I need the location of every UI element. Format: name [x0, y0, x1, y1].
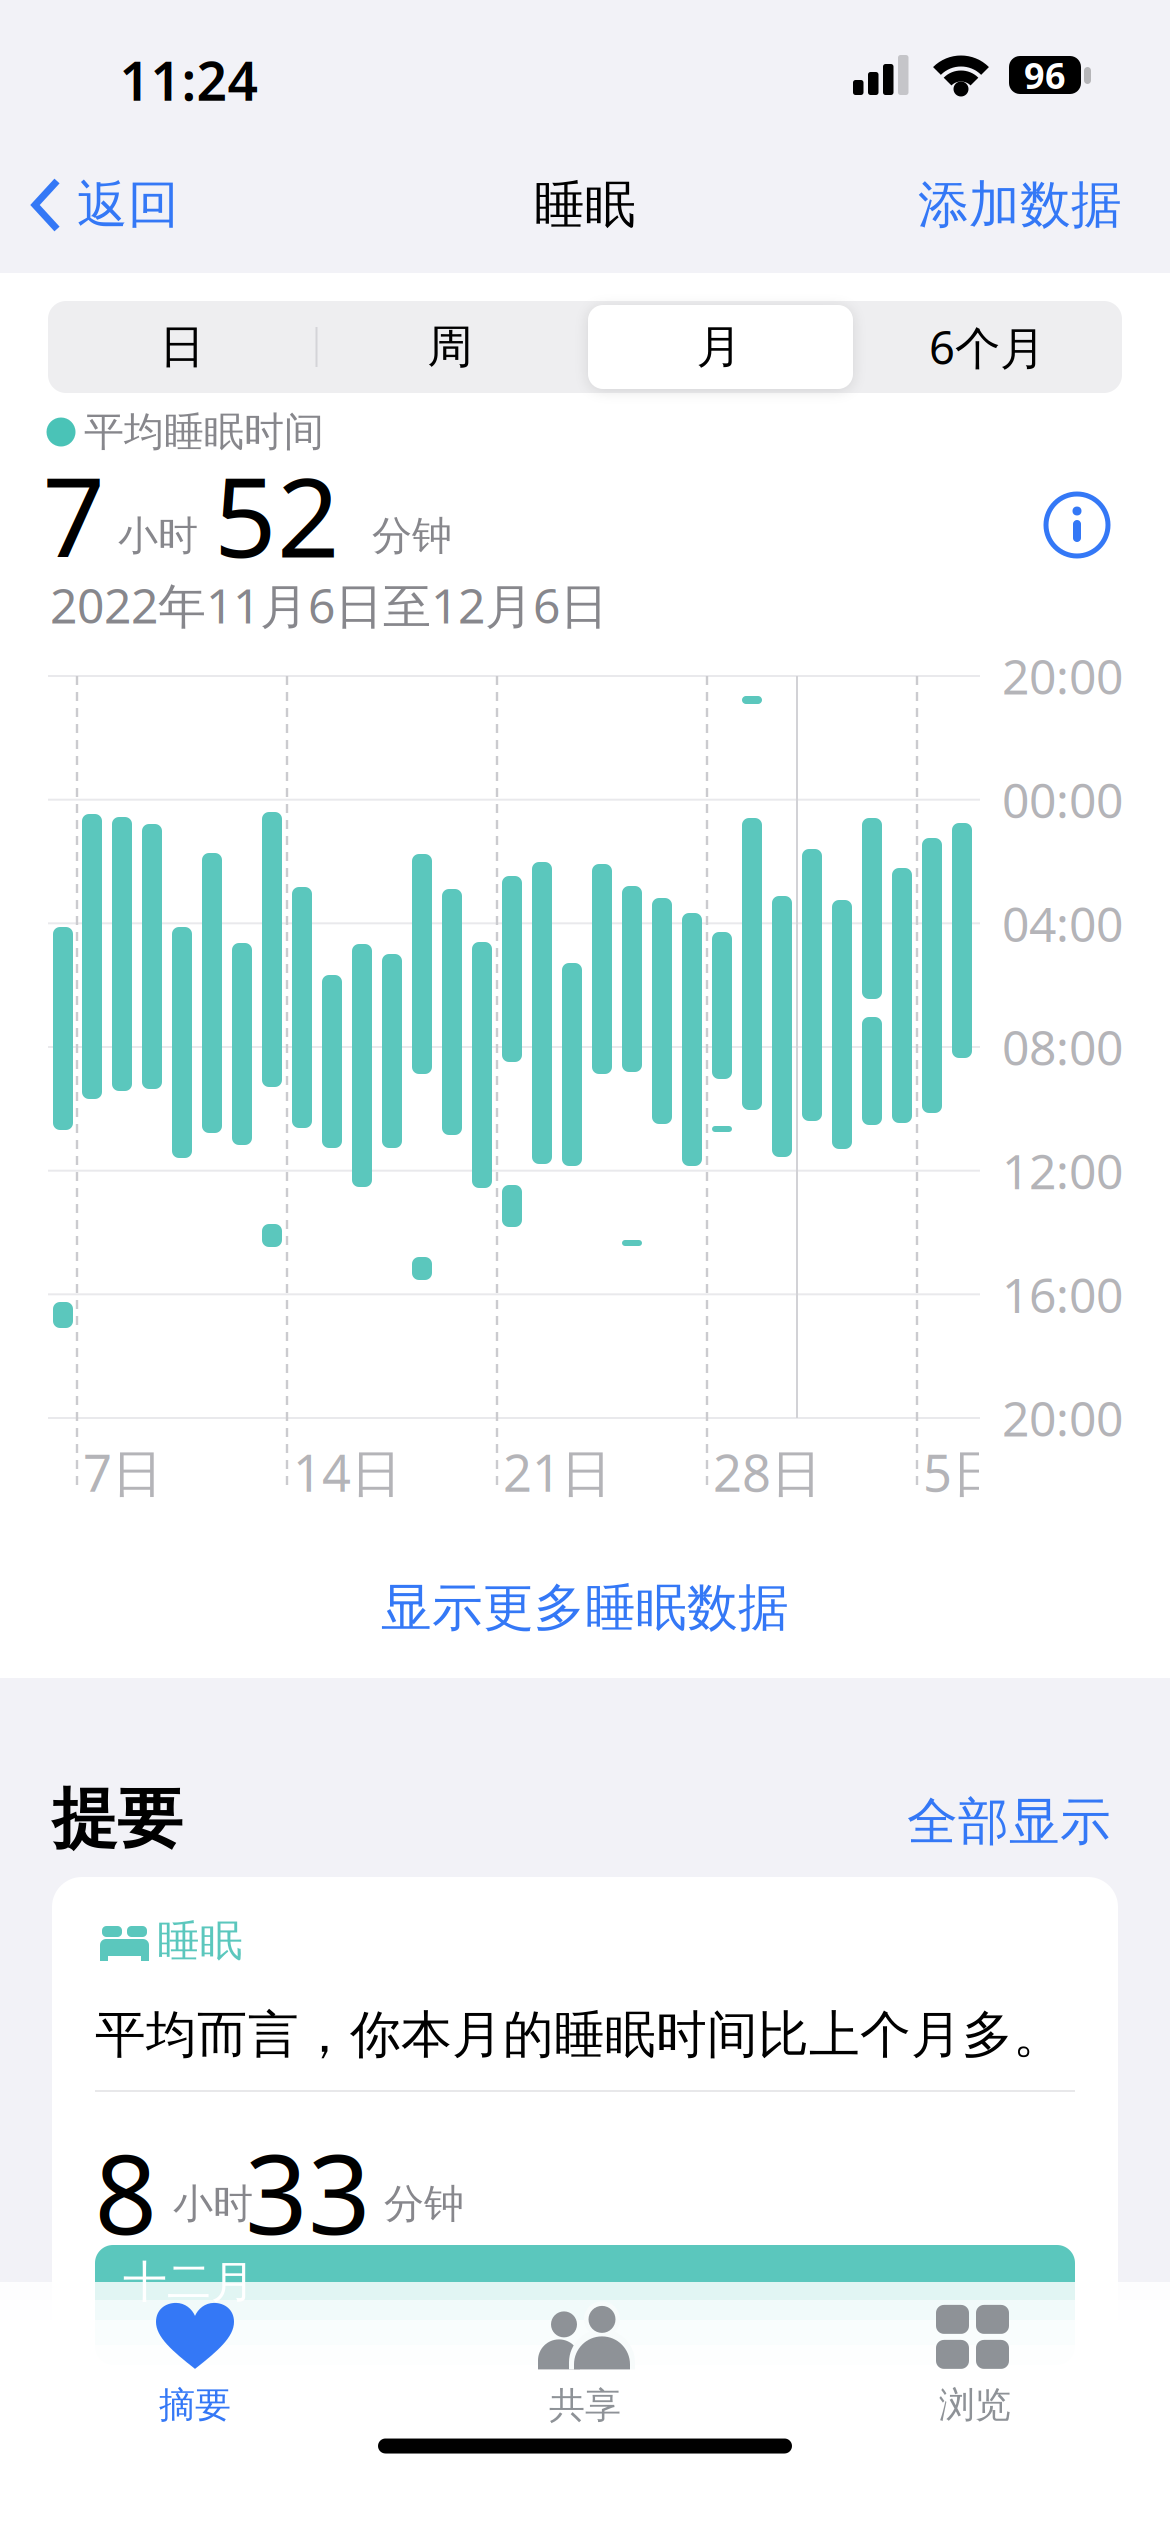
- staticText: 00:00: [1002, 768, 1123, 831]
- button[interactable]: 周: [320, 305, 580, 389]
- button[interactable]: 月: [589, 305, 849, 389]
- button[interactable]: 返回: [31, 174, 179, 236]
- staticText: 08:00: [1002, 1015, 1123, 1079]
- staticText: 33: [245, 2119, 371, 2265]
- button[interactable]: 浏览: [936, 2303, 1014, 2427]
- staticText: 十二月: [123, 2255, 255, 2309]
- staticText: 6个月: [929, 317, 1045, 377]
- staticText: 添加数据: [918, 174, 1122, 236]
- staticText: 显示更多睡眠数据: [381, 1577, 789, 1639]
- staticText: 月: [696, 319, 741, 375]
- staticText: 返回: [77, 174, 179, 236]
- staticText: 96: [1024, 51, 1066, 99]
- staticText: 8: [94, 2119, 157, 2265]
- staticText: 全部显示: [907, 1791, 1111, 1853]
- button[interactable]: 添加数据: [918, 174, 1122, 236]
- staticText: 睡眠: [534, 174, 636, 236]
- staticText: 浏览: [939, 2383, 1011, 2427]
- staticText: 小时: [173, 2179, 253, 2228]
- staticText: 分钟: [372, 511, 452, 560]
- staticText: 52: [214, 442, 340, 588]
- staticText: 周: [427, 319, 472, 375]
- staticText: 平均而言，你本月的睡眠时间比上个月多。: [95, 2004, 1064, 2066]
- staticText: 小时: [118, 511, 198, 560]
- staticText: 提要: [52, 1779, 182, 1859]
- staticText: 12:00: [1002, 1139, 1123, 1202]
- staticText: 16:00: [1002, 1262, 1123, 1326]
- staticText: 2022年11月6日至12月6日: [50, 573, 608, 637]
- button[interactable]: 6个月: [857, 305, 1117, 389]
- staticText: 平均睡眠时间: [84, 407, 324, 456]
- staticText: 21日: [503, 1438, 612, 1506]
- button[interactable]: 关于此数据: [1046, 494, 1108, 556]
- staticText: 日: [159, 319, 204, 375]
- staticText: 5日: [923, 1438, 1003, 1506]
- button[interactable]: 全部显示: [907, 1791, 1111, 1853]
- button[interactable]: 摘要: [156, 2303, 234, 2427]
- button[interactable]: 共享: [538, 2302, 632, 2428]
- button[interactable]: 日: [52, 305, 312, 389]
- staticText: 7日: [83, 1438, 163, 1506]
- staticText: 共享: [549, 2383, 621, 2428]
- staticText: 28日: [713, 1438, 822, 1506]
- staticText: 14日: [293, 1438, 402, 1506]
- staticText: 睡眠: [157, 1915, 243, 1967]
- staticText: 11:24: [119, 45, 258, 115]
- staticText: 分钟: [384, 2179, 464, 2228]
- button[interactable]: 显示更多睡眠数据: [381, 1577, 789, 1639]
- staticText: 摘要: [159, 2383, 231, 2427]
- staticText: 7: [42, 442, 105, 588]
- button[interactable]: 睡眠: [0, 0, 1170, 2532]
- staticText: 20:00: [1002, 644, 1123, 708]
- staticText: 20:00: [1002, 1386, 1123, 1450]
- staticText: 04:00: [1002, 891, 1123, 955]
